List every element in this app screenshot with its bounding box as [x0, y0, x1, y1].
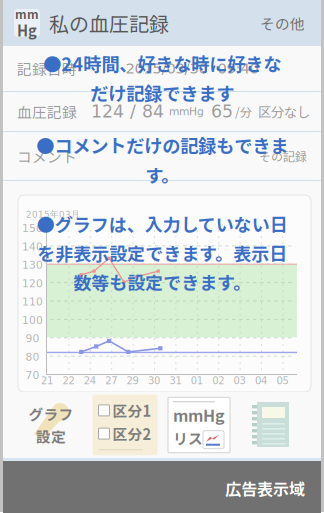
staticText: 150 [22, 222, 43, 235]
staticText: 05 [276, 375, 288, 387]
staticText: 27 [105, 375, 117, 387]
staticText: mmHg [169, 105, 204, 118]
staticText: リスト [173, 427, 218, 449]
button[interactable]: 血圧記録 [3, 92, 321, 131]
staticText: 21 [41, 375, 53, 387]
staticText: 03 [234, 375, 246, 387]
staticText: コメント [17, 145, 77, 167]
staticText: mmHg [173, 403, 225, 426]
staticText: 100 [22, 314, 43, 326]
staticText: 65 [211, 101, 233, 122]
staticText: mm [15, 5, 39, 23]
staticText: 24 [84, 375, 96, 387]
staticText: 2015/03/30 09:40 [125, 60, 258, 77]
staticText: 70 [25, 369, 39, 382]
staticText: 110 [22, 296, 43, 308]
staticText: 01 [191, 375, 203, 387]
button[interactable]: 区分フィルタ [88, 396, 162, 454]
staticText: その記録 [259, 147, 307, 165]
staticText: 120 [22, 277, 43, 290]
staticText: 区分1 [112, 400, 151, 421]
button[interactable]: 記録ノート [236, 396, 310, 454]
staticText: 90 [25, 332, 39, 345]
staticText: 記録日時 [17, 58, 77, 79]
button[interactable]: コメント [3, 132, 321, 180]
staticText: 区分なし [258, 102, 310, 121]
staticText: 22 [62, 375, 74, 387]
staticText: 広告表示域 [225, 477, 305, 500]
button[interactable]: グラフ設定 [14, 396, 88, 454]
staticText: 私の血圧記録 [49, 8, 169, 37]
staticText: 区分2 [112, 423, 151, 444]
staticText: 31 [169, 375, 181, 387]
staticText: 02 [212, 375, 224, 387]
staticText: /分 [235, 103, 252, 120]
staticText: 30 [148, 375, 160, 387]
button[interactable]: mmHgリスト [162, 396, 236, 454]
staticText: 04 [255, 375, 267, 387]
staticText: 29 [127, 375, 139, 387]
button[interactable]: その他 [256, 6, 309, 40]
staticText: 血圧記録 [17, 101, 77, 122]
staticText: ●24時間、好きな時に好きな だけ記録できます [43, 50, 281, 106]
staticText: グラフ [28, 403, 73, 424]
staticText: 130 [22, 259, 43, 271]
staticText: 140 [22, 241, 43, 253]
button[interactable]: 記録日時 [3, 46, 321, 91]
staticText: ●コメントだけの記録もできま す。 [36, 132, 288, 188]
staticText: 設定 [36, 425, 66, 447]
staticText: その他 [260, 12, 305, 34]
staticText: 124 / 84 [91, 101, 164, 122]
staticText: 80 [25, 351, 39, 363]
staticText: 2015年03月 [26, 209, 80, 220]
staticText: ●グラフは、入力していない日 を非表示設定できます。表示日 数等も設定できます。 [36, 211, 287, 295]
staticText: Hg [17, 20, 37, 41]
